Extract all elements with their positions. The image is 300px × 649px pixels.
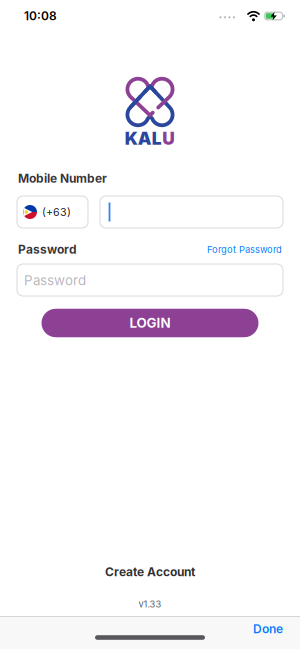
staticText: Create Account (105, 565, 195, 579)
button[interactable]: Mobile number (100, 196, 283, 228)
button[interactable]: Password (17, 264, 283, 296)
staticText: Password (18, 242, 77, 257)
button[interactable]: Country code (+63) (17, 196, 88, 228)
button[interactable]: Create Account (105, 565, 195, 579)
staticText: v1.33 (138, 598, 161, 609)
button[interactable]: LOGIN (41, 309, 258, 337)
staticText: U (162, 128, 175, 149)
staticText: Password (24, 273, 86, 288)
staticText: Forgot Password (207, 244, 282, 255)
button[interactable]: Done (243, 622, 293, 636)
staticText: Mobile Number (18, 171, 107, 186)
staticText: Done (253, 622, 283, 636)
staticText: 10:08 (24, 9, 57, 23)
staticText: KAL (125, 128, 162, 149)
button[interactable]: Forgot Password (207, 244, 282, 255)
staticText: LOGIN (129, 315, 170, 331)
staticText: (+63) (42, 206, 71, 218)
